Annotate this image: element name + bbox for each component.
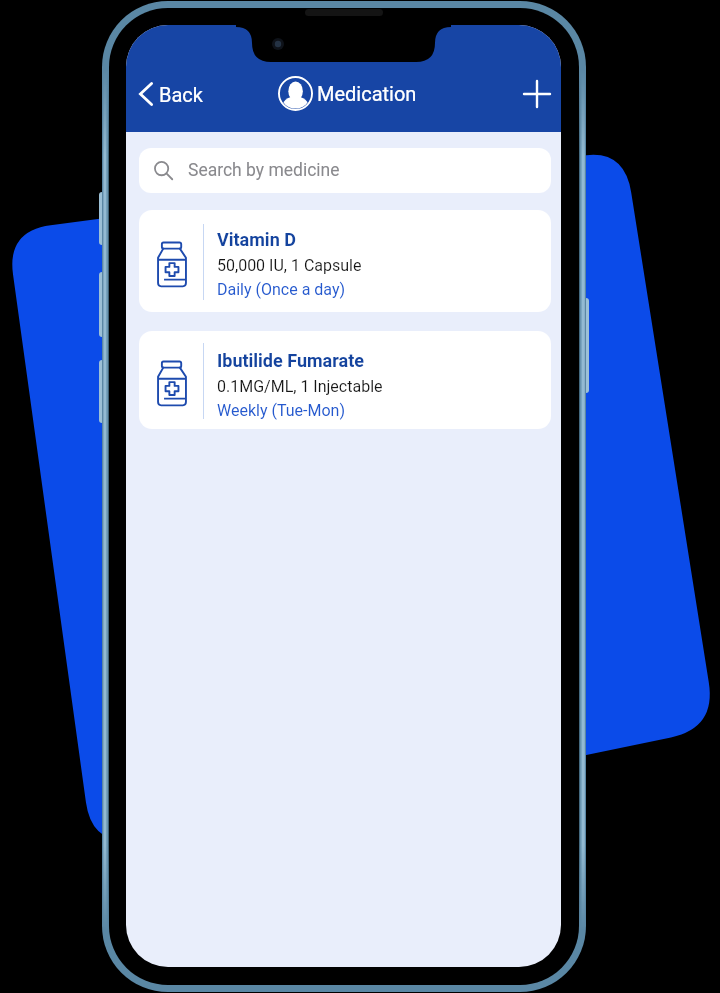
button[interactable]: Search by medicine [139,148,551,193]
staticText: Vitamin D [217,229,296,250]
staticText: Daily (Once a day) [217,280,346,299]
button[interactable]: Add medication [513,70,561,118]
button[interactable]: Back [134,71,207,117]
button[interactable]: Ibutilide Fumarate [139,331,551,429]
staticText: 50,000 IU, 1 Capsule [217,256,362,275]
staticText: Medication [317,82,417,105]
staticText: 0.1MG/ML, 1 Injectable [217,377,383,396]
staticText: Search by medicine [188,160,340,181]
staticText: Back [159,83,203,106]
button[interactable]: Vitamin D [139,210,551,312]
staticText: Ibutilide Fumarate [217,350,364,371]
staticText: Weekly (Tue-Mon) [217,401,345,420]
